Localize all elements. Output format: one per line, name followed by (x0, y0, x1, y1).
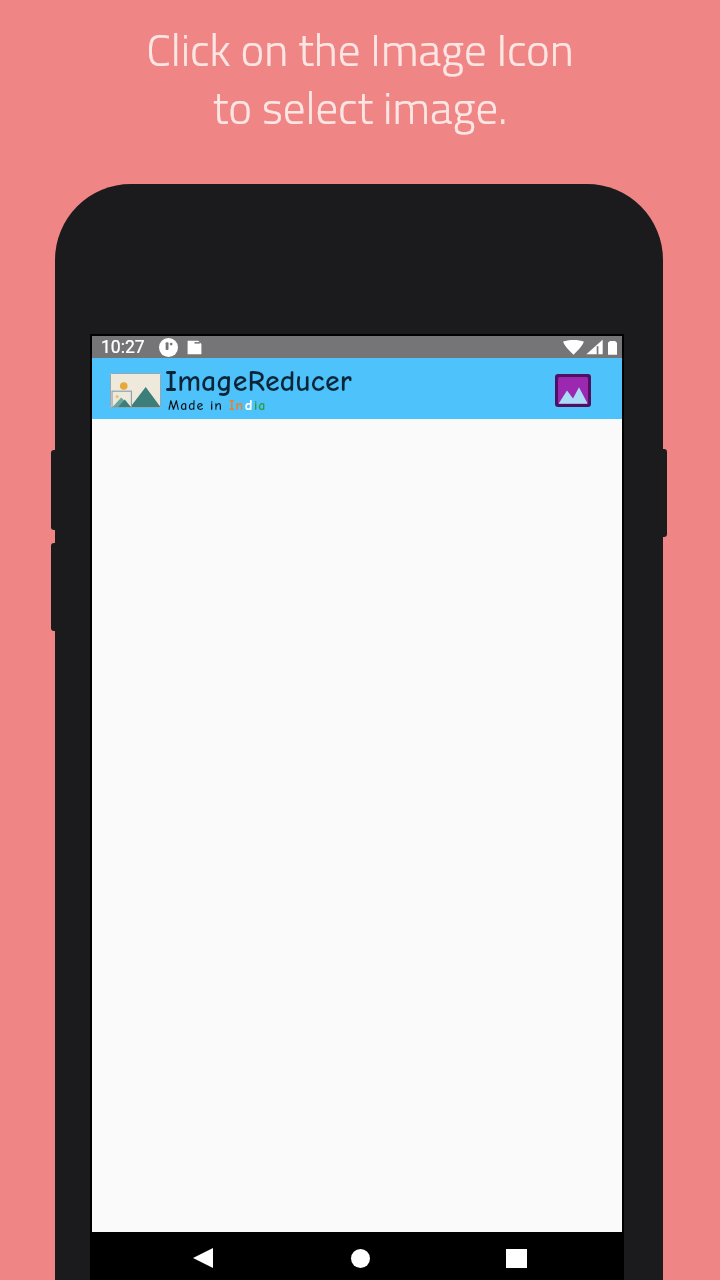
staticText: 10:27 (101, 337, 145, 358)
button[interactable]: Home (336, 1244, 384, 1272)
staticText: ia (254, 397, 267, 413)
staticText: In (229, 397, 245, 413)
button[interactable]: Select image (558, 377, 588, 404)
staticText: Made in (168, 397, 229, 413)
button[interactable]: Back (179, 1244, 227, 1272)
button[interactable]: Recents (492, 1244, 540, 1272)
staticText: ImageReducer (165, 364, 352, 399)
staticText: d (245, 397, 254, 413)
staticText: Click on the Image Icon to select image. (146, 15, 574, 142)
